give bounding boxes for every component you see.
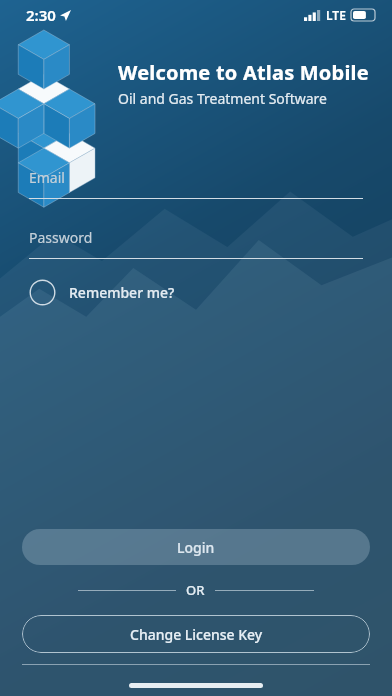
staticText: Login — [177, 538, 215, 557]
button[interactable]: Change License Key — [22, 615, 370, 653]
staticText: Email — [29, 168, 65, 187]
staticText: Welcome to Atlas Mobile — [118, 59, 369, 86]
other: Remember me checkbox — [29, 279, 56, 306]
staticText: OR — [186, 581, 205, 599]
button[interactable]: Login — [22, 529, 370, 565]
staticText: Remember me? — [69, 283, 175, 302]
staticText: Change License Key — [130, 625, 263, 644]
button[interactable]: Remember me checkbox — [29, 279, 175, 306]
staticText: Oil and Gas Treatment Software — [118, 89, 327, 108]
staticText: Password — [29, 228, 93, 247]
staticText: LTE — [326, 7, 346, 23]
button[interactable]: Email — [29, 168, 363, 199]
button[interactable]: Password — [29, 228, 363, 259]
staticText: 2:30 — [26, 5, 56, 25]
